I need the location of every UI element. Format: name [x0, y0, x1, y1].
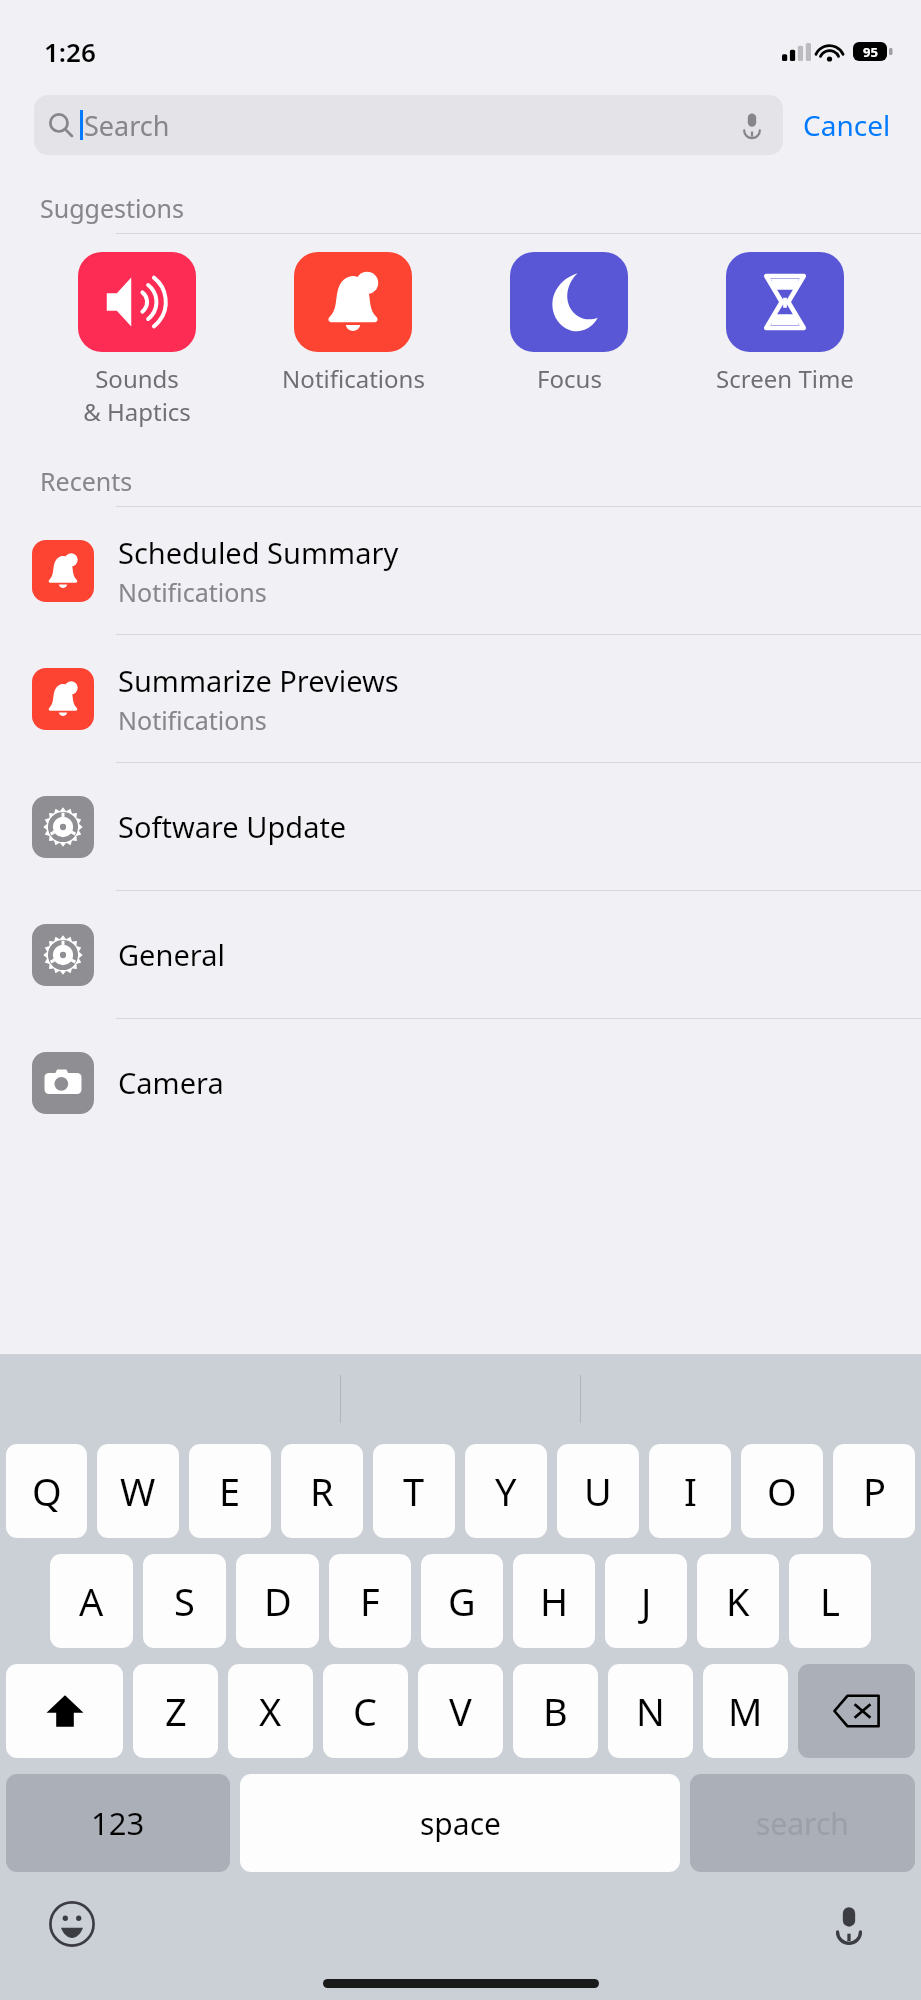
- staticText: J: [641, 1575, 652, 1627]
- button[interactable]: Summarize Previews: [0, 635, 921, 762]
- staticText: Focus: [537, 362, 602, 395]
- staticText: A: [79, 1575, 104, 1627]
- staticText: Camera: [118, 1063, 224, 1102]
- staticText: Suggestions: [40, 191, 185, 225]
- button[interactable]: W: [97, 1444, 179, 1538]
- button[interactable]: Scheduled Summary: [0, 507, 921, 634]
- staticText: & Haptics: [83, 395, 191, 428]
- staticText: R: [310, 1465, 334, 1517]
- staticText: Notifications: [118, 703, 267, 737]
- staticText: Notifications: [118, 575, 267, 609]
- staticText: Search: [84, 107, 735, 144]
- button[interactable]: E: [189, 1444, 271, 1538]
- button[interactable]: M: [703, 1664, 788, 1758]
- button[interactable]: T: [373, 1444, 455, 1538]
- button[interactable]: K: [697, 1554, 779, 1648]
- button[interactable]: Emoji: [44, 1896, 100, 1952]
- staticText: I: [684, 1465, 697, 1517]
- staticText: search: [756, 1803, 849, 1844]
- button[interactable]: Cancel: [799, 98, 895, 152]
- staticText: space: [420, 1803, 501, 1844]
- staticText: D: [264, 1575, 292, 1627]
- button[interactable]: P: [833, 1444, 915, 1538]
- button[interactable]: N: [608, 1664, 693, 1758]
- staticText: S: [174, 1575, 195, 1627]
- button[interactable]: B: [513, 1664, 598, 1758]
- staticText: Z: [165, 1685, 187, 1737]
- staticText: E: [219, 1465, 241, 1517]
- button[interactable]: O: [741, 1444, 823, 1538]
- staticText: Cancel: [803, 106, 891, 144]
- button[interactable]: R: [281, 1444, 363, 1538]
- staticText: T: [403, 1465, 425, 1517]
- button[interactable]: V: [418, 1664, 503, 1758]
- staticText: Sounds: [95, 362, 179, 395]
- button[interactable]: Notifications: [245, 248, 461, 399]
- button[interactable]: Sounds: [28, 248, 245, 432]
- button[interactable]: J: [605, 1554, 687, 1648]
- button[interactable]: S: [143, 1554, 226, 1648]
- button[interactable]: I: [649, 1444, 731, 1538]
- button[interactable]: H: [513, 1554, 595, 1648]
- button[interactable]: A: [50, 1554, 133, 1648]
- staticText: General: [118, 935, 225, 974]
- staticText: U: [584, 1465, 612, 1517]
- button[interactable]: Camera: [0, 1019, 921, 1146]
- staticText: O: [767, 1465, 797, 1517]
- staticText: 95: [863, 43, 878, 61]
- staticText: Notifications: [282, 362, 425, 395]
- button[interactable]: L: [789, 1554, 871, 1648]
- staticText: K: [726, 1575, 750, 1627]
- staticText: X: [259, 1685, 282, 1737]
- staticText: 1:26: [44, 34, 96, 69]
- button[interactable]: 123: [6, 1774, 230, 1872]
- staticText: W: [120, 1465, 156, 1517]
- button[interactable]: Dictate: [821, 1896, 877, 1952]
- button[interactable]: Z: [133, 1664, 218, 1758]
- staticText: H: [540, 1575, 569, 1627]
- staticText: P: [863, 1465, 886, 1517]
- button[interactable]: Backspace: [798, 1664, 915, 1758]
- staticText: Screen Time: [716, 362, 854, 395]
- button[interactable]: General: [0, 891, 921, 1018]
- staticText: G: [448, 1575, 476, 1627]
- staticText: V: [449, 1685, 472, 1737]
- button[interactable]: G: [421, 1554, 503, 1648]
- button[interactable]: D: [236, 1554, 319, 1648]
- button[interactable]: Q: [6, 1444, 87, 1538]
- staticText: N: [636, 1685, 665, 1737]
- staticText: 123: [91, 1802, 145, 1844]
- button[interactable]: space: [240, 1774, 680, 1872]
- button[interactable]: Software Update: [0, 763, 921, 890]
- button[interactable]: Shift: [6, 1664, 123, 1758]
- button[interactable]: U: [557, 1444, 639, 1538]
- staticText: F: [360, 1575, 380, 1627]
- staticText: C: [353, 1685, 378, 1737]
- button[interactable]: Focus: [461, 248, 677, 399]
- staticText: Software Update: [118, 807, 347, 846]
- staticText: M: [728, 1685, 763, 1737]
- button[interactable]: F: [329, 1554, 411, 1648]
- button[interactable]: Search: [34, 95, 783, 155]
- staticText: Scheduled Summary: [118, 533, 399, 572]
- staticText: B: [543, 1685, 568, 1737]
- staticText: Recents: [40, 464, 133, 498]
- button[interactable]: Y: [465, 1444, 547, 1538]
- staticText: L: [820, 1575, 840, 1627]
- button[interactable]: C: [323, 1664, 408, 1758]
- staticText: Q: [32, 1465, 62, 1517]
- staticText: Y: [495, 1465, 517, 1517]
- button[interactable]: Screen Time: [677, 248, 893, 399]
- button[interactable]: search: [690, 1774, 915, 1872]
- button[interactable]: Voice search: [735, 108, 769, 142]
- staticText: Summarize Previews: [118, 661, 399, 700]
- button[interactable]: X: [228, 1664, 313, 1758]
